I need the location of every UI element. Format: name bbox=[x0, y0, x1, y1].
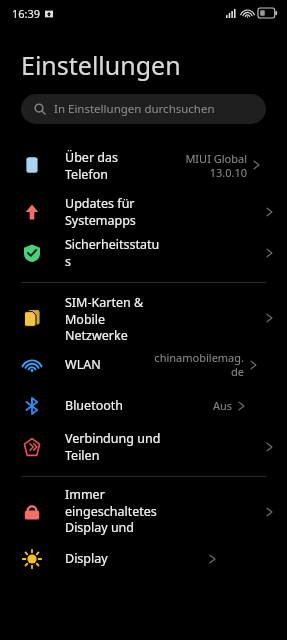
button[interactable]: SIM-Karten & Mobile Netzwerke bbox=[0, 292, 287, 344]
button[interactable]: Über das Telefon bbox=[0, 139, 287, 191]
button[interactable]: Sicherheitsstatus bbox=[0, 232, 287, 273]
staticText: Über das Telefon bbox=[65, 149, 118, 182]
staticText: Sicherheitsstatus bbox=[65, 236, 165, 269]
staticText: chinamobilemag. de bbox=[154, 350, 244, 379]
button[interactable]: Display bbox=[0, 538, 287, 579]
staticText: Immer eingeschaltetes Display und Sperrb… bbox=[65, 486, 165, 538]
staticText: Bluetooth bbox=[65, 397, 124, 414]
staticText: Display bbox=[65, 550, 108, 567]
staticText: Updates für Systemapps bbox=[65, 195, 165, 228]
button[interactable]: WLAN bbox=[0, 344, 287, 385]
button[interactable]: In Einstellungen durchsuchen bbox=[21, 94, 266, 124]
button[interactable]: Bluetooth bbox=[0, 385, 287, 426]
button[interactable]: Updates für Systemapps bbox=[0, 191, 287, 232]
staticText: In Einstellungen durchsuchen bbox=[54, 101, 215, 117]
staticText: Verbindung und Teilen bbox=[65, 430, 165, 463]
button[interactable]: Verbindung und Teilen bbox=[0, 426, 287, 467]
staticText: Aus bbox=[212, 398, 232, 413]
staticText: Einstellungen bbox=[21, 48, 181, 82]
button[interactable]: Immer eingeschaltetes Display und Sperrb… bbox=[0, 486, 287, 538]
staticText: 16:39 bbox=[12, 6, 41, 21]
staticText: MIUI Global 13.0.10 bbox=[185, 151, 247, 180]
staticText: WLAN bbox=[65, 356, 101, 373]
staticText: SIM-Karten & Mobile Netzwerke bbox=[65, 294, 165, 343]
